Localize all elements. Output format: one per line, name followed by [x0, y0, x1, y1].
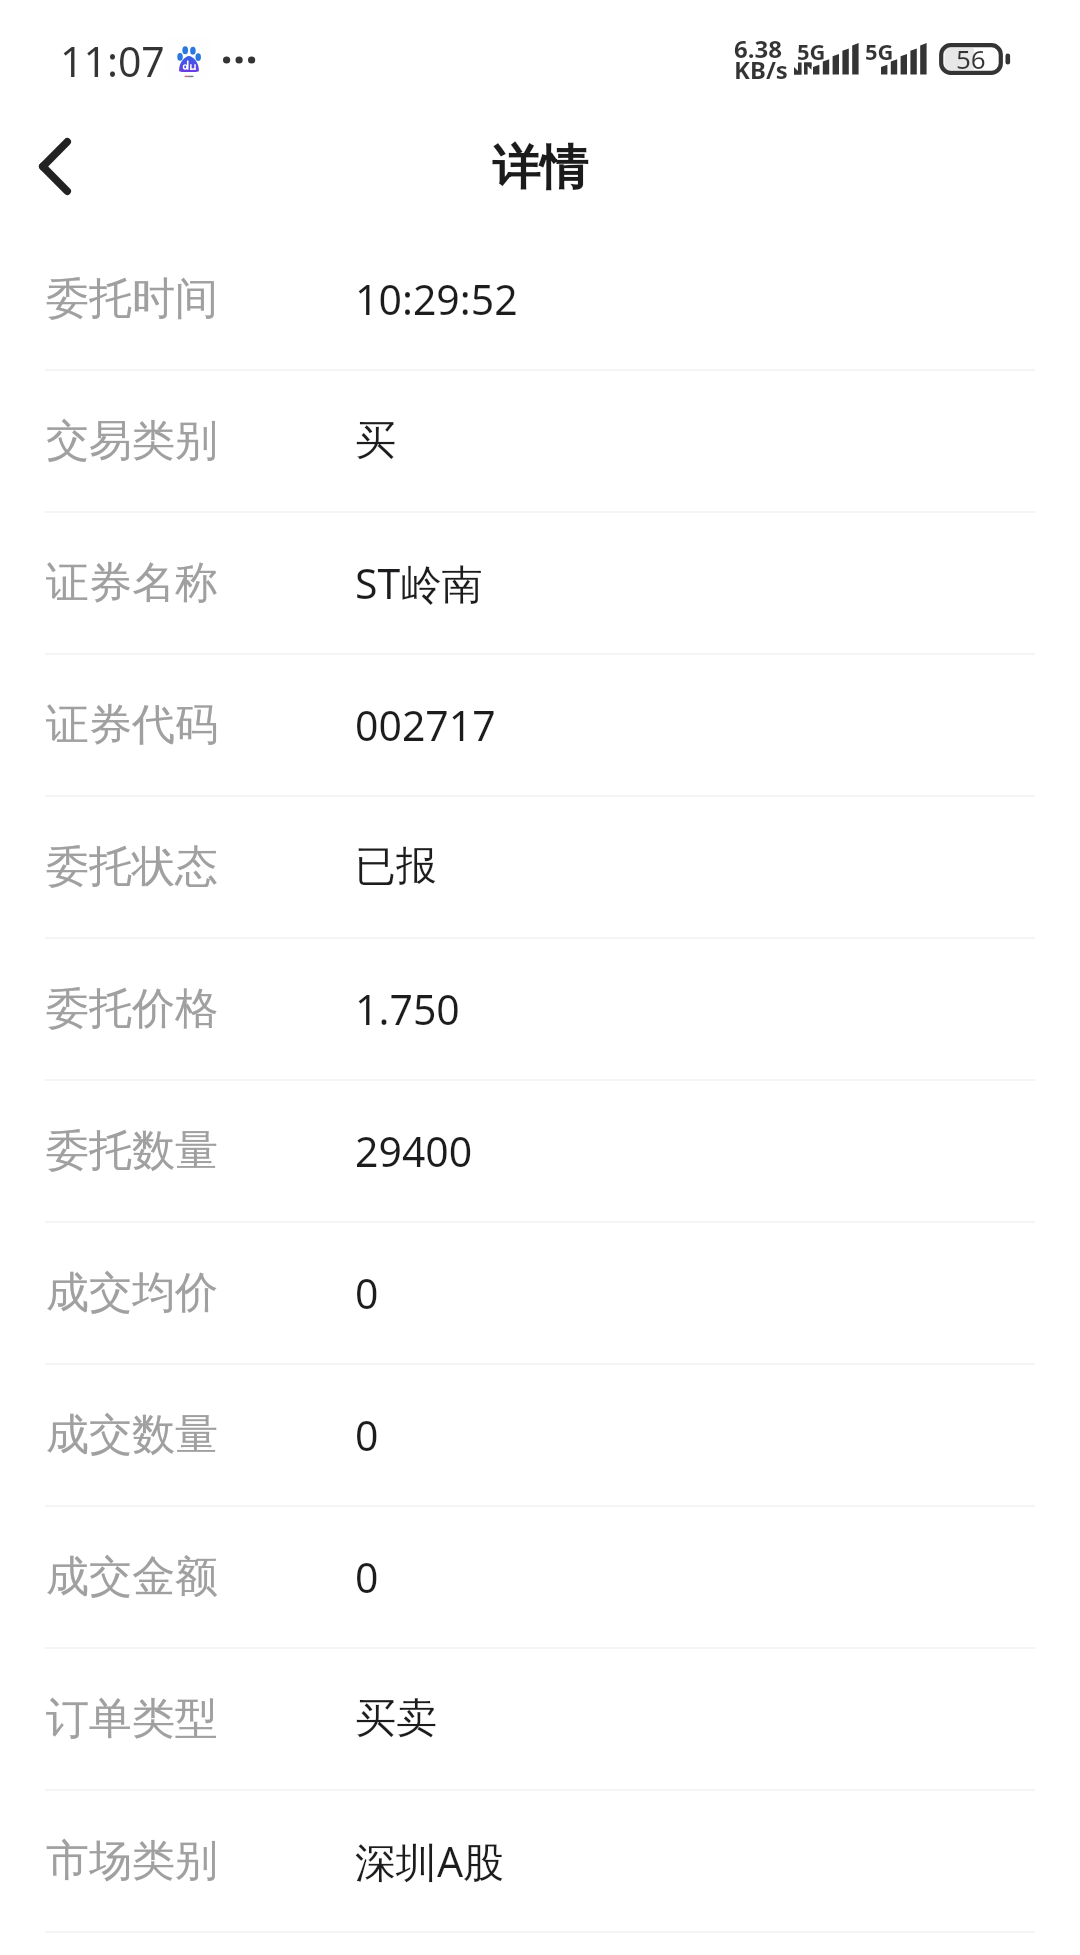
staticText: 11:07: [60, 33, 165, 89]
staticText: 0: [355, 1549, 379, 1605]
staticText: KB/s: [734, 53, 788, 86]
staticText: 证券代码: [46, 698, 218, 752]
staticText: 证券名称: [46, 556, 218, 610]
staticText: 0: [355, 1407, 379, 1463]
button[interactable]: 委托数量: [0, 1081, 1080, 1223]
button[interactable]: 证券代码: [0, 655, 1080, 797]
button[interactable]: 证券名称: [0, 513, 1080, 655]
staticText: 6.38: [734, 32, 782, 65]
staticText: 买卖: [355, 1693, 437, 1745]
staticText: 订单类型: [46, 1692, 218, 1746]
button[interactable]: 交易类别: [0, 371, 1080, 513]
staticText: 委托时间: [46, 272, 218, 326]
button[interactable]: 委托价格: [0, 939, 1080, 1081]
staticText: 5G: [797, 36, 826, 66]
button[interactable]: 市场类别: [0, 1791, 1080, 1933]
button[interactable]: 成交均价: [0, 1223, 1080, 1365]
button[interactable]: 成交数量: [0, 1365, 1080, 1507]
staticText: 成交金额: [46, 1550, 218, 1604]
staticText: 56: [956, 41, 986, 73]
staticText: 5G: [865, 36, 894, 66]
staticText: 002717: [355, 697, 496, 753]
staticText: 市场类别: [46, 1834, 218, 1888]
staticText: 委托状态: [46, 840, 218, 894]
button[interactable]: Back: [3, 110, 107, 222]
button[interactable]: 委托状态: [0, 797, 1080, 939]
staticText: 29400: [355, 1123, 473, 1179]
button[interactable]: 委托时间: [0, 229, 1080, 371]
staticText: 0: [355, 1265, 379, 1321]
staticText: ST岭南: [355, 555, 483, 611]
staticText: 10:29:52: [355, 271, 518, 327]
staticText: 1.750: [355, 981, 460, 1037]
button[interactable]: 成交金额: [0, 1507, 1080, 1649]
staticText: 买: [355, 415, 396, 467]
staticText: 委托价格: [46, 982, 218, 1036]
staticText: 详情: [0, 138, 1080, 198]
staticText: 已报: [355, 841, 437, 893]
staticText: 交易类别: [46, 414, 218, 468]
staticText: 委托数量: [46, 1124, 218, 1178]
staticText: 深圳A股: [355, 1833, 505, 1889]
staticText: 成交均价: [46, 1266, 218, 1320]
button[interactable]: 订单类型: [0, 1649, 1080, 1791]
staticText: 成交数量: [46, 1408, 218, 1462]
